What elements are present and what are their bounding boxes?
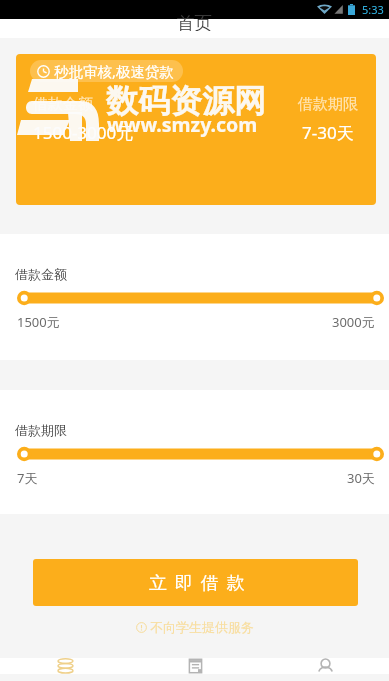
button[interactable]: 秒批审核,极速贷款 xyxy=(16,54,376,205)
staticText: 5:33 xyxy=(362,2,384,17)
staticText: 7天 xyxy=(17,469,38,487)
staticText: 数码资源网 xyxy=(106,81,266,121)
staticText: 7-30天 xyxy=(302,121,354,144)
staticText: 借款期限 xyxy=(298,95,358,114)
staticText: 首页 xyxy=(177,12,212,31)
button[interactable]: 立 即 借 款 xyxy=(33,559,358,606)
staticText: 立 即 借 款 xyxy=(149,570,247,595)
staticText: www.smzy.com xyxy=(107,111,258,138)
staticText: 1500-3000元 xyxy=(33,121,134,144)
staticText: 不向学生提供服务 xyxy=(150,619,254,635)
staticText: 借款期限 xyxy=(15,422,67,438)
button[interactable]: Records xyxy=(129,658,259,674)
staticText: 30天 xyxy=(347,469,375,487)
staticText: 秒批审核,极速贷款 xyxy=(54,61,174,81)
staticText: 借款金额 xyxy=(33,95,93,114)
button[interactable] xyxy=(17,445,384,463)
button[interactable]: Profile xyxy=(259,658,389,674)
staticText: 借款金额 xyxy=(15,266,67,282)
staticText: 1500元 xyxy=(17,313,60,331)
button[interactable]: Loan xyxy=(0,658,129,674)
button[interactable] xyxy=(17,289,384,307)
staticText: 3000元 xyxy=(332,313,375,331)
